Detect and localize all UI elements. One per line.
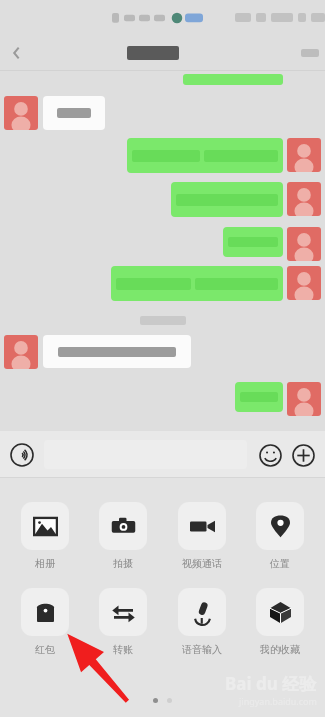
- staticText: 语音输入: [182, 643, 222, 656]
- button[interactable]: [127, 138, 283, 173]
- button[interactable]: Avatar: [287, 138, 321, 172]
- button[interactable]: Avatar: [287, 182, 321, 216]
- button[interactable]: Transfer: [92, 588, 154, 656]
- staticText: 转账: [113, 643, 133, 656]
- button[interactable]: Avatar: [287, 382, 321, 416]
- button[interactable]: Camera: [92, 502, 154, 570]
- button[interactable]: [235, 382, 283, 412]
- button[interactable]: Red packet: [14, 588, 76, 656]
- staticText: 拍摄: [113, 557, 133, 570]
- button[interactable]: Emoji: [255, 440, 285, 470]
- button[interactable]: [43, 96, 105, 130]
- button[interactable]: Avatar: [287, 266, 321, 300]
- button[interactable]: Avatar: [287, 227, 321, 261]
- button[interactable]: Video call: [171, 502, 233, 570]
- button[interactable]: Location: [249, 502, 311, 570]
- staticText: Bai du 经验: [225, 672, 317, 695]
- button[interactable]: Voice input: [7, 440, 37, 470]
- button[interactable]: [223, 227, 283, 257]
- button[interactable]: Favorites: [249, 588, 311, 656]
- staticText: 我的收藏: [260, 643, 300, 656]
- button[interactable]: Back: [0, 36, 34, 70]
- button[interactable]: [171, 182, 283, 217]
- button[interactable]: Voice input: [171, 588, 233, 656]
- button[interactable]: More: [288, 440, 318, 470]
- staticText: 视频通话: [182, 557, 222, 570]
- button[interactable]: Avatar: [4, 96, 38, 130]
- button[interactable]: [111, 266, 283, 301]
- button[interactable]: [43, 335, 191, 368]
- staticText: 红包: [35, 643, 55, 656]
- button[interactable]: Photo album: [14, 502, 76, 570]
- button[interactable]: Avatar: [4, 335, 38, 369]
- staticText: 位置: [270, 557, 290, 570]
- staticText: 相册: [35, 557, 55, 570]
